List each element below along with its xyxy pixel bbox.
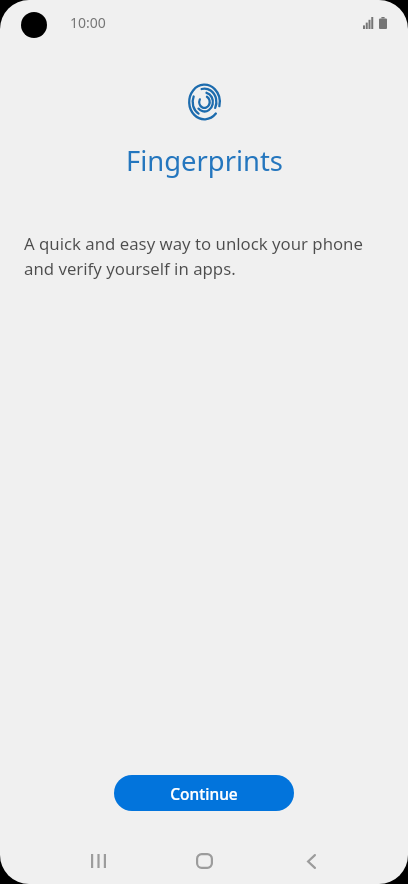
staticText: Fingerprints — [126, 142, 283, 179]
staticText: 10:00 — [70, 13, 106, 32]
button[interactable]: Back — [275, 838, 347, 884]
button[interactable]: Recent apps — [62, 838, 134, 884]
staticText: Continue — [170, 783, 238, 804]
button[interactable]: Continue — [114, 775, 294, 811]
staticText: A quick and easy way to unlock your phon… — [24, 232, 374, 280]
button[interactable]: Home — [168, 838, 240, 884]
